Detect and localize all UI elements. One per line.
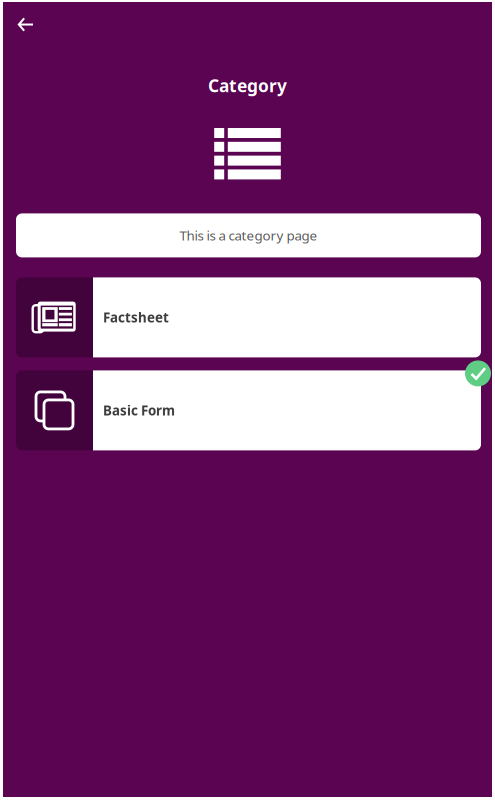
staticText: Category [208,74,287,97]
button[interactable]: Factsheet [16,277,481,357]
button[interactable]: Back [7,7,44,42]
button[interactable]: Basic Form [16,370,481,450]
staticText: This is a category page [179,227,317,244]
staticText: Basic Form [103,402,175,419]
staticText: Factsheet [103,309,169,326]
